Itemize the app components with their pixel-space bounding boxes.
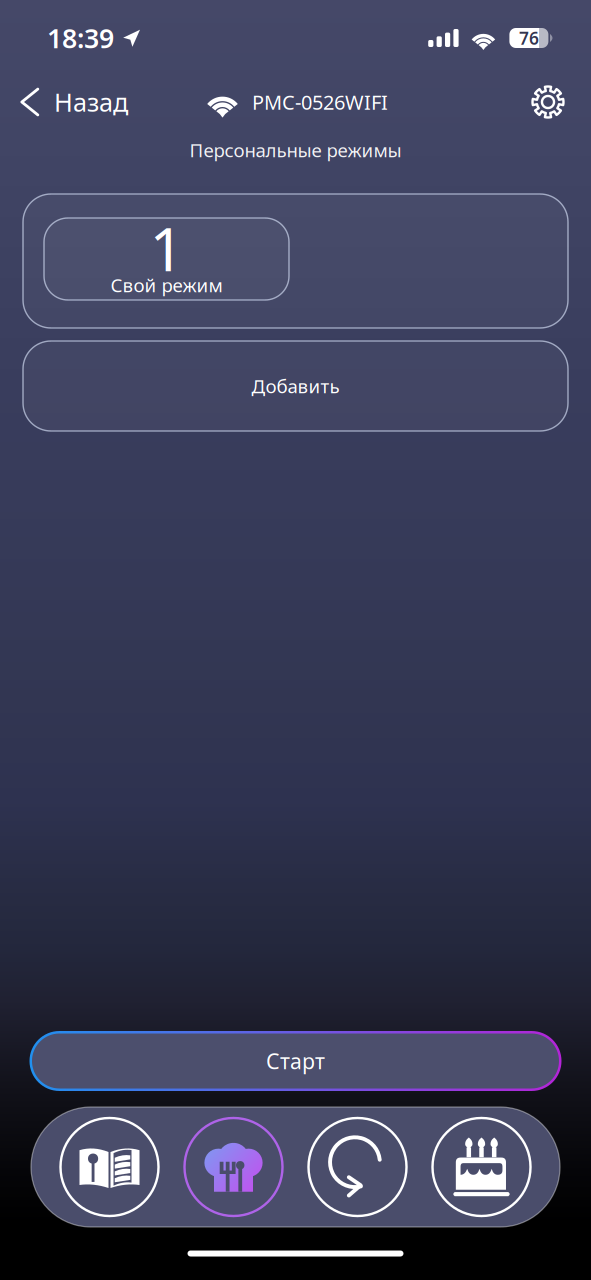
staticText: Добавить — [251, 374, 339, 398]
button[interactable]: Settings — [517, 71, 591, 133]
staticText: Персональные режимы — [189, 138, 401, 162]
button[interactable]: 1 — [44, 218, 289, 300]
button[interactable]: Назад — [0, 71, 142, 133]
staticText: Старт — [266, 1047, 325, 1075]
staticText: 1 — [149, 208, 183, 288]
staticText: Назад — [54, 85, 128, 119]
staticText: 18:39 — [47, 20, 114, 56]
staticText: 76 — [519, 26, 539, 49]
button[interactable]: Recipes — [47, 1107, 171, 1227]
button[interactable]: Добавить — [23, 341, 568, 431]
staticText: Свой режим — [110, 273, 222, 297]
button[interactable]: Старт — [29, 1031, 561, 1091]
button[interactable]: History — [295, 1107, 419, 1227]
button[interactable]: Cook — [171, 1107, 295, 1227]
staticText: PMC-0526WIFI — [252, 89, 388, 115]
button[interactable]: Desserts — [419, 1107, 543, 1227]
